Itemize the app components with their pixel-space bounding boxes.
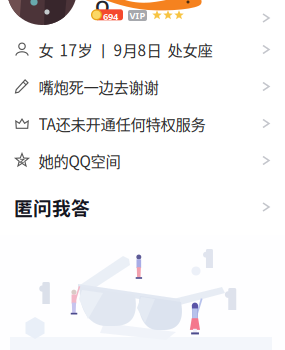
staticText: 嘴炮死一边去谢谢	[38, 75, 158, 98]
button[interactable]: TA还未开通任何特权服务	[0, 105, 285, 142]
staticText: VIP	[129, 9, 145, 22]
staticText: TA还未开通任何特权服务	[38, 112, 205, 135]
button[interactable]: Q	[0, 0, 285, 31]
button[interactable]: 女 17岁 丨 9月8日 处女座	[0, 31, 285, 68]
button[interactable]: 匿问我答	[0, 179, 285, 235]
button[interactable]: 她的QQ空间	[0, 142, 285, 179]
staticText: 她的QQ空间	[38, 149, 120, 172]
button[interactable]: 嘴炮死一边去谢谢	[0, 68, 285, 105]
staticText: 女 17岁 丨 9月8日 处女座	[38, 38, 212, 61]
staticText: 694	[103, 10, 118, 23]
staticText: 匿问我答	[14, 193, 90, 220]
staticText: Q	[95, 0, 110, 19]
